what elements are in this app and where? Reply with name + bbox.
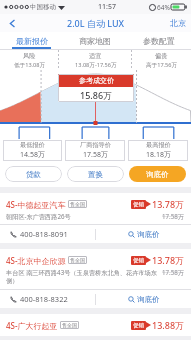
staticText: 最新报价 — [16, 36, 48, 46]
staticText: 参数配置 — [143, 36, 175, 46]
button[interactable]: Back — [0, 14, 24, 32]
staticText: 询底价 — [137, 295, 160, 304]
button[interactable]: Call — [10, 290, 95, 308]
other: Call — [10, 230, 18, 238]
staticText: 北京 — [170, 18, 186, 28]
staticText: 4S-北京中企欣源 — [6, 255, 66, 266]
staticText: 17.58万 — [162, 268, 185, 276]
button[interactable]: 询底价 — [129, 166, 186, 182]
staticText: 最低报价 — [20, 141, 45, 149]
staticText: 询底价 — [137, 230, 160, 239]
staticText: 朝阳区-东广营西路26号 — [6, 212, 158, 220]
staticText: 高于17.56万 — [146, 61, 178, 69]
staticText: 厂商指导价 — [80, 141, 111, 149]
button[interactable]: 4S-北京中企欣源 — [0, 249, 191, 308]
staticText: 64% — [157, 3, 170, 12]
button[interactable]: 贷款 — [5, 166, 62, 182]
button[interactable]: 参数配置 — [127, 32, 191, 49]
button[interactable]: 询底价 — [96, 290, 191, 308]
staticText: 13.78万 — [152, 254, 185, 266]
staticText: 丰台区 南三环西路43号（玉泉营桥东北角、花卉市场东侧） — [6, 268, 158, 285]
staticText: 400-818-8322 — [20, 294, 68, 304]
staticText: 18.18万 — [146, 150, 171, 160]
staticText: 14.58万 — [20, 150, 45, 160]
button[interactable]: Call — [10, 225, 95, 243]
button[interactable]: 4S-广大行起亚 — [0, 314, 191, 336]
button[interactable]: 4S-中德起亚汽车 — [0, 193, 191, 243]
staticText: 置换 — [88, 170, 103, 179]
staticText: 17.58万 — [162, 212, 185, 220]
button[interactable]: 最新报价 — [0, 32, 63, 49]
button[interactable]: 最低报价 — [3, 140, 62, 161]
staticText: 11:57 — [98, 2, 116, 12]
staticText: 13.08万-17.56万 — [75, 61, 117, 69]
button[interactable]: 厂商指导价 — [65, 140, 125, 161]
staticText: 售全国 — [62, 322, 77, 328]
staticText: 最高报价 — [146, 141, 171, 149]
staticText: 低于13.08万 — [14, 61, 46, 69]
staticText: 售全国 — [70, 201, 85, 207]
staticText: 400-818-8091 — [20, 229, 68, 239]
button[interactable]: 北京 — [170, 18, 186, 28]
staticText: 贷款 — [26, 170, 41, 179]
staticText: 13.78万 — [152, 198, 185, 210]
staticText: 15.86万 — [80, 89, 113, 101]
button[interactable]: 最高报价 — [128, 140, 188, 161]
staticText: 售全国 — [70, 257, 85, 263]
button[interactable]: 商家地图 — [63, 32, 127, 49]
staticText: 4S-中德起亚汽车 — [6, 199, 66, 210]
button[interactable]: 询底价 — [96, 225, 191, 243]
staticText: 风险 — [23, 52, 36, 60]
other: Call — [10, 295, 18, 303]
staticText: 促销 — [133, 257, 144, 264]
staticText: 参考成交价 — [79, 76, 114, 85]
button[interactable]: 置换 — [67, 166, 124, 182]
staticText: 偏贵 — [155, 52, 168, 60]
staticText: 适宜 — [89, 52, 102, 60]
staticText: 4S-广大行起亚 — [6, 320, 58, 331]
staticText: 促销 — [133, 201, 144, 208]
staticText: 13.88万 — [152, 319, 185, 331]
staticText: 17.58万 — [83, 150, 108, 160]
staticText: 促销 — [133, 322, 144, 329]
staticText: 商家地图 — [79, 36, 111, 46]
staticText: 询底价 — [146, 170, 169, 179]
staticText: 2.0L 自动 LUX — [67, 17, 125, 29]
staticText: 中国移动 — [30, 3, 56, 11]
